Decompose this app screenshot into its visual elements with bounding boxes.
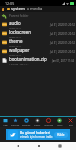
button[interactable]: lockscreen (0, 29, 76, 38)
other: Storage (2, 8, 4, 11)
staticText: wallpaper (9, 47, 30, 53)
staticText: Jan 01, 2017 11:34 (52, 59, 75, 63)
staticText: Settings (22, 124, 31, 127)
button[interactable]: More (54, 117, 65, 127)
button[interactable]: Settings (21, 117, 32, 127)
staticText: bootanimation.zip (9, 56, 47, 62)
staticText: Player (34, 124, 41, 127)
button[interactable]: Player (32, 117, 43, 127)
staticText: Favorite (11, 124, 20, 127)
staticText: Exit (69, 124, 73, 127)
staticText: drwxr-xr-x (9, 44, 21, 47)
staticText: theme (9, 38, 23, 44)
staticText: audio (9, 20, 21, 26)
button[interactable]: Up one level (0, 12, 76, 20)
button[interactable]: theme (0, 38, 76, 47)
staticText: etmek için hemen indir. (20, 135, 53, 139)
button[interactable]: New (0, 117, 10, 127)
button[interactable]: Favorite (10, 117, 21, 127)
staticText: Yükle (57, 133, 65, 137)
staticText: media (30, 6, 43, 12)
staticText: More (57, 124, 63, 127)
button[interactable]: audio (0, 20, 76, 29)
staticText: drwxr-xr-x (9, 35, 21, 38)
staticText: lockscreen (9, 29, 31, 35)
button[interactable]: Recents (55, 142, 64, 150)
staticText: New (3, 124, 8, 127)
staticText: Parent folder (9, 14, 29, 18)
staticText: 12:05 (5, 1, 15, 6)
staticText: 1.69 MB -rw-r--r-- (9, 62, 29, 65)
button[interactable]: wallpaper (0, 47, 76, 56)
staticText: system (11, 6, 25, 12)
button[interactable]: Home (34, 142, 43, 150)
button[interactable]: Back (13, 142, 22, 150)
staticText: drwxr-xr-x (9, 53, 21, 56)
button[interactable]: Upgrade (43, 117, 54, 127)
staticText: Bu güncel haberleri takip (20, 131, 53, 135)
button[interactable]: Exit (65, 117, 76, 127)
staticText: Jul 31, 2020 01:20:52 (50, 23, 75, 27)
staticText: drwxr-xr-x (9, 26, 21, 29)
button[interactable]: Yükle (54, 132, 68, 138)
button[interactable]: bootanimation.zip (0, 56, 76, 65)
other: Up one level (1, 13, 8, 20)
staticText: Jul 31, 2020 01:20:52 (50, 41, 75, 45)
staticText: Upgrade (44, 124, 53, 127)
staticText: Jul 31, 2020 01:20:52 (50, 32, 75, 36)
button[interactable]: Bu güncel haberleri takip (6, 129, 70, 140)
staticText: Jul 31, 2020 01:20:52 (50, 50, 75, 54)
